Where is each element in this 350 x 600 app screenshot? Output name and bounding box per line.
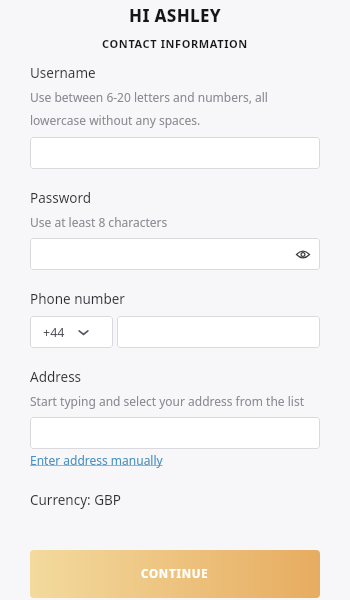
button[interactable]: Enter address manually: [30, 452, 163, 468]
staticText: Phone number: [30, 290, 125, 308]
staticText: Address: [30, 368, 82, 386]
staticText: Password: [30, 189, 92, 207]
staticText: Currency: GBP: [30, 491, 121, 509]
staticText: Enter address manually: [30, 452, 163, 468]
staticText: +44: [43, 324, 65, 341]
staticText: Use between 6-20 letters and numbers, al…: [30, 89, 268, 129]
button[interactable]: [30, 417, 320, 449]
staticText: CONTINUE: [141, 566, 209, 582]
staticText: CONTACT INFORMATION: [0, 36, 350, 51]
staticText: Start typing and select your address fro…: [30, 393, 304, 409]
button[interactable]: Show password: [30, 238, 320, 270]
button[interactable]: [117, 316, 320, 348]
button[interactable]: Show password: [295, 246, 311, 262]
staticText: Use at least 8 characters: [30, 214, 168, 230]
staticText: Username: [30, 64, 96, 82]
button[interactable]: Country calling code, +44: [30, 316, 113, 348]
button[interactable]: CONTINUE: [30, 550, 320, 598]
staticText: HI ASHLEY: [0, 4, 350, 27]
button[interactable]: [30, 137, 320, 169]
